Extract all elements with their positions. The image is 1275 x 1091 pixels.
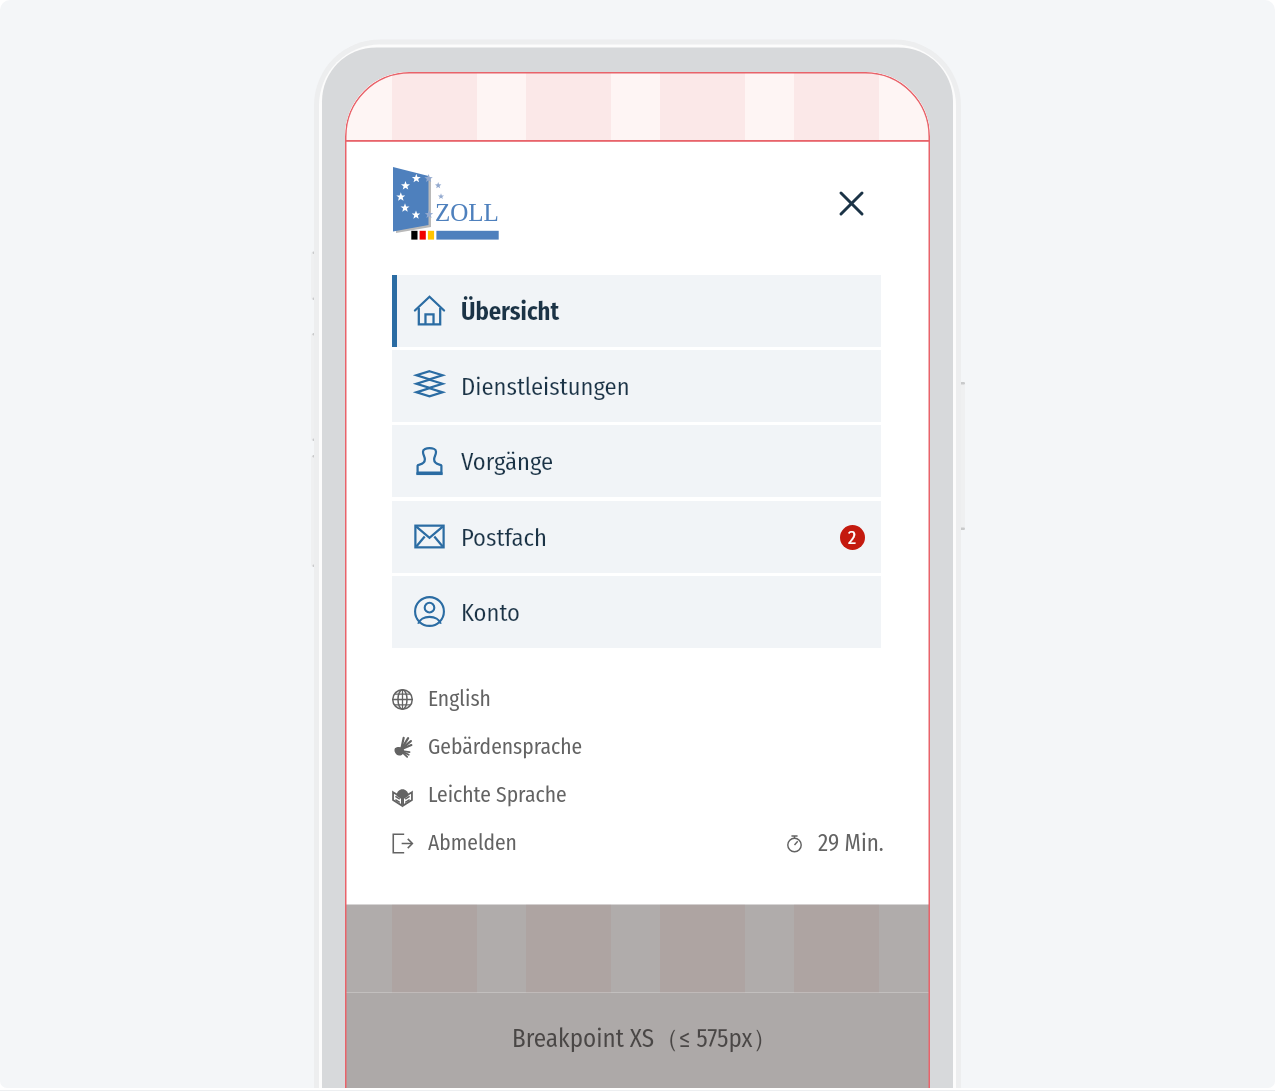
staticText: Breakpoint XS（≤ 575px）: [512, 1023, 778, 1054]
staticText: ZOLL: [435, 199, 499, 227]
staticText: Postfach: [461, 523, 547, 552]
button[interactable]: Postfach: [392, 501, 881, 573]
staticText: Konto: [461, 598, 520, 627]
button[interactable]: Leichte Sprache: [392, 774, 881, 816]
staticText: Übersicht: [461, 297, 560, 326]
button[interactable]: Schließen: [831, 183, 871, 223]
button[interactable]: Abmelden: [392, 822, 881, 864]
staticText: Vorgänge: [461, 447, 554, 476]
staticText: 2: [848, 527, 857, 549]
button[interactable]: Konto: [392, 576, 881, 648]
staticText: Gebärdensprache: [428, 734, 583, 760]
button[interactable]: Übersicht: [392, 275, 881, 347]
staticText: English: [428, 686, 491, 712]
staticText: 29 Min.: [818, 829, 884, 857]
staticText: Leichte Sprache: [428, 782, 567, 808]
button[interactable]: English: [392, 678, 881, 720]
button[interactable]: Dienstleistungen: [392, 350, 881, 422]
button[interactable]: Gebärdensprache: [392, 726, 881, 768]
button[interactable]: Vorgänge: [392, 425, 881, 497]
staticText: Abmelden: [428, 830, 517, 856]
staticText: Dienstleistungen: [461, 372, 630, 401]
